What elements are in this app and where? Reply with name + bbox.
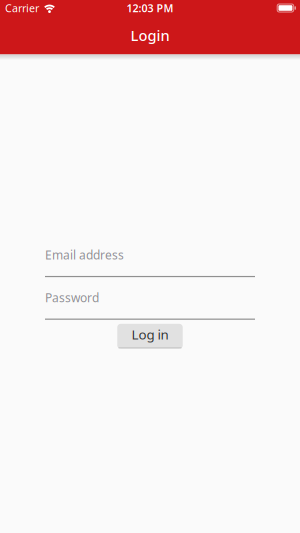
button[interactable]: Log in (117, 324, 183, 349)
staticText: Carrier (5, 1, 39, 15)
staticText: 12:03 PM (126, 1, 173, 15)
staticText: Login (130, 25, 169, 45)
button[interactable]: Password (45, 290, 255, 320)
staticText: Log in (131, 325, 168, 343)
button[interactable]: Email address (45, 247, 255, 277)
staticText: Password (45, 290, 99, 305)
staticText: Email address (45, 247, 124, 263)
